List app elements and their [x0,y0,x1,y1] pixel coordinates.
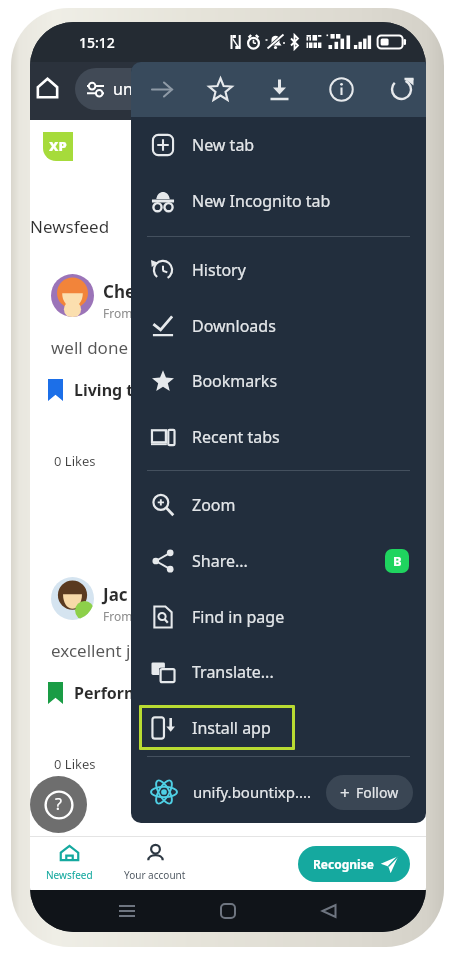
staticText: excellent jo [51,639,141,662]
button[interactable]: unify.bountixp.... [131,763,426,821]
button[interactable]: Translate... [131,644,426,699]
staticText: unify.bountixp.... [193,782,312,802]
button[interactable]: Download [256,62,302,117]
button[interactable]: Recent tabs [131,409,426,464]
staticText: XP [49,137,67,155]
button[interactable]: Page info [318,62,364,117]
staticText: + [340,781,350,804]
staticText: 0 Likes [54,755,96,773]
button[interactable]: Your account [119,845,191,882]
staticText: Install app [192,717,271,739]
staticText: Zoom [192,494,236,516]
staticText: Your account [124,868,186,882]
staticText: Recognise [313,856,374,872]
button[interactable]: Forward [139,62,185,117]
button[interactable]: Zoom [131,477,426,532]
button[interactable]: Downloads [131,298,426,353]
button[interactable]: Find in page [131,589,426,644]
staticText: Translate... [192,661,274,683]
button[interactable]: Install app [131,700,426,755]
staticText: Newsfeed [46,868,93,882]
button[interactable]: Recognise [298,846,410,882]
staticText: Che [103,280,136,303]
staticText: History [192,259,246,281]
staticText: un [113,78,133,100]
staticText: Find in page [192,606,285,628]
button[interactable]: Recents [106,890,148,932]
button[interactable]: New Incognito tab [131,173,426,228]
staticText: Follow [356,783,399,802]
staticText: Downloads [192,315,276,337]
staticText: B [393,552,402,570]
staticText: 0 Likes [54,452,96,470]
button[interactable]: Bookmark [197,62,243,117]
button[interactable]: Back [308,890,350,932]
staticText: New Incognito tab [192,190,331,212]
staticText: From [103,608,133,624]
staticText: New tab [192,134,255,156]
button[interactable]: Reload [378,62,424,117]
staticText: Bookmarks [192,370,278,392]
staticText: 15:12 [79,33,115,52]
staticText: Living the [74,379,154,401]
button[interactable]: Home [207,890,249,932]
button[interactable]: Help [30,776,87,833]
staticText: Recent tabs [192,426,280,448]
staticText: ? [55,793,62,815]
staticText: From [103,305,133,321]
button[interactable]: Newsfeed [45,845,94,882]
button[interactable]: Share... [131,533,426,588]
staticText: Jac [103,583,128,606]
button[interactable]: un [75,68,235,110]
button[interactable]: History [131,242,426,297]
button[interactable]: Home [31,71,64,104]
staticText: Performa [74,682,150,704]
staticText: well done [51,336,128,359]
staticText: Share... [192,550,248,572]
button[interactable]: Bookmarks [131,353,426,408]
staticText: Newsfeed [30,215,110,238]
button[interactable]: New tab [131,117,426,172]
button[interactable]: + [326,775,413,810]
